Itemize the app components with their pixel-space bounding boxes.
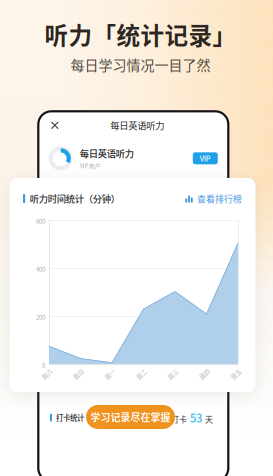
staticText: 周五 (230, 370, 242, 378)
staticText: 打卡 (171, 413, 187, 425)
staticText: 400 (36, 265, 45, 274)
staticText: VIP (200, 153, 211, 164)
button[interactable]: 查看排行榜 (185, 192, 242, 205)
staticText: VIP用户 (80, 162, 101, 170)
staticText: 周日 (72, 370, 84, 378)
staticText: 听力时间统计（分钟） (30, 192, 120, 205)
staticText: 查看排行榜 (197, 192, 242, 205)
staticText: 天 (205, 413, 213, 425)
staticText: 周三 (167, 370, 179, 378)
staticText: 200 (36, 313, 45, 322)
button[interactable]: 关闭 (45, 115, 65, 135)
staticText: 53 (187, 409, 205, 426)
staticText: 听力「统计记录」 (44, 17, 236, 51)
staticText: 周六 (41, 370, 53, 378)
staticText: 学习记录尽在掌握 (90, 410, 170, 424)
button[interactable]: 每日英语听力 (50, 143, 218, 173)
staticText: 周一 (104, 370, 116, 378)
staticText: 0 (42, 361, 45, 370)
staticText: 周二 (135, 370, 147, 378)
staticText: 每日英语听力 (110, 118, 164, 132)
staticText: 600 (36, 217, 45, 226)
staticText: 每日英语听力 (80, 146, 134, 160)
staticText: 每日学习情况一目了然 (70, 54, 210, 74)
staticText: 周四 (198, 370, 210, 378)
staticText: 打卡统计 (56, 412, 84, 423)
